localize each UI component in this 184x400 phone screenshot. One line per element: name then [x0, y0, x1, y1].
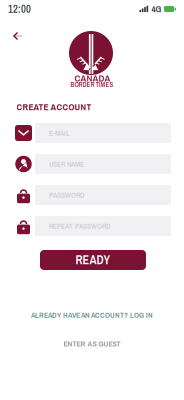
button[interactable]: READY	[40, 250, 146, 270]
staticText: E-MAIL	[49, 128, 70, 138]
staticText: PASSWORD	[49, 190, 84, 200]
staticText: 12:00	[8, 2, 31, 16]
staticText: 4G	[151, 3, 161, 15]
staticText: ENTER AS GUEST	[63, 338, 120, 349]
staticText: CANADA	[74, 71, 110, 85]
staticText: USER NAME	[49, 159, 84, 169]
button[interactable]: REPEAT PASSWORD	[15, 216, 171, 236]
staticText: READY	[75, 252, 110, 268]
button[interactable]: PASSWORD	[15, 185, 171, 205]
button[interactable]: ENTER AS GUEST	[58, 333, 125, 354]
button[interactable]: Back	[6, 26, 28, 46]
staticText: CREATE ACCOUNT	[16, 101, 91, 113]
button[interactable]: USER NAME	[15, 154, 171, 174]
staticText: ALREADY HAVE AN ACCOUNT? LOG IN	[31, 310, 153, 320]
button[interactable]: ALREADY HAVE AN ACCOUNT? LOG IN	[26, 305, 158, 325]
button[interactable]: E-MAIL	[15, 123, 171, 143]
staticText: REPEAT PASSWORD	[49, 221, 110, 231]
staticText: BORDER TIMES	[70, 80, 113, 89]
